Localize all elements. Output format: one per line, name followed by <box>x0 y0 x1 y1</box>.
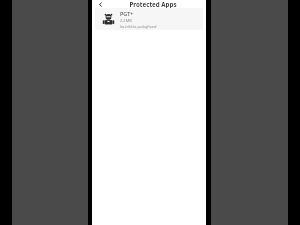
staticText: PGT+ <box>120 10 199 17</box>
staticText: Protected Apps <box>106 0 200 8</box>
staticText: lw.trikiks.pubgfixed <box>120 24 199 29</box>
button[interactable]: PGT+ <box>95 8 203 30</box>
button[interactable]: Back <box>96 0 104 8</box>
staticText: 2.2MB <box>120 18 199 23</box>
